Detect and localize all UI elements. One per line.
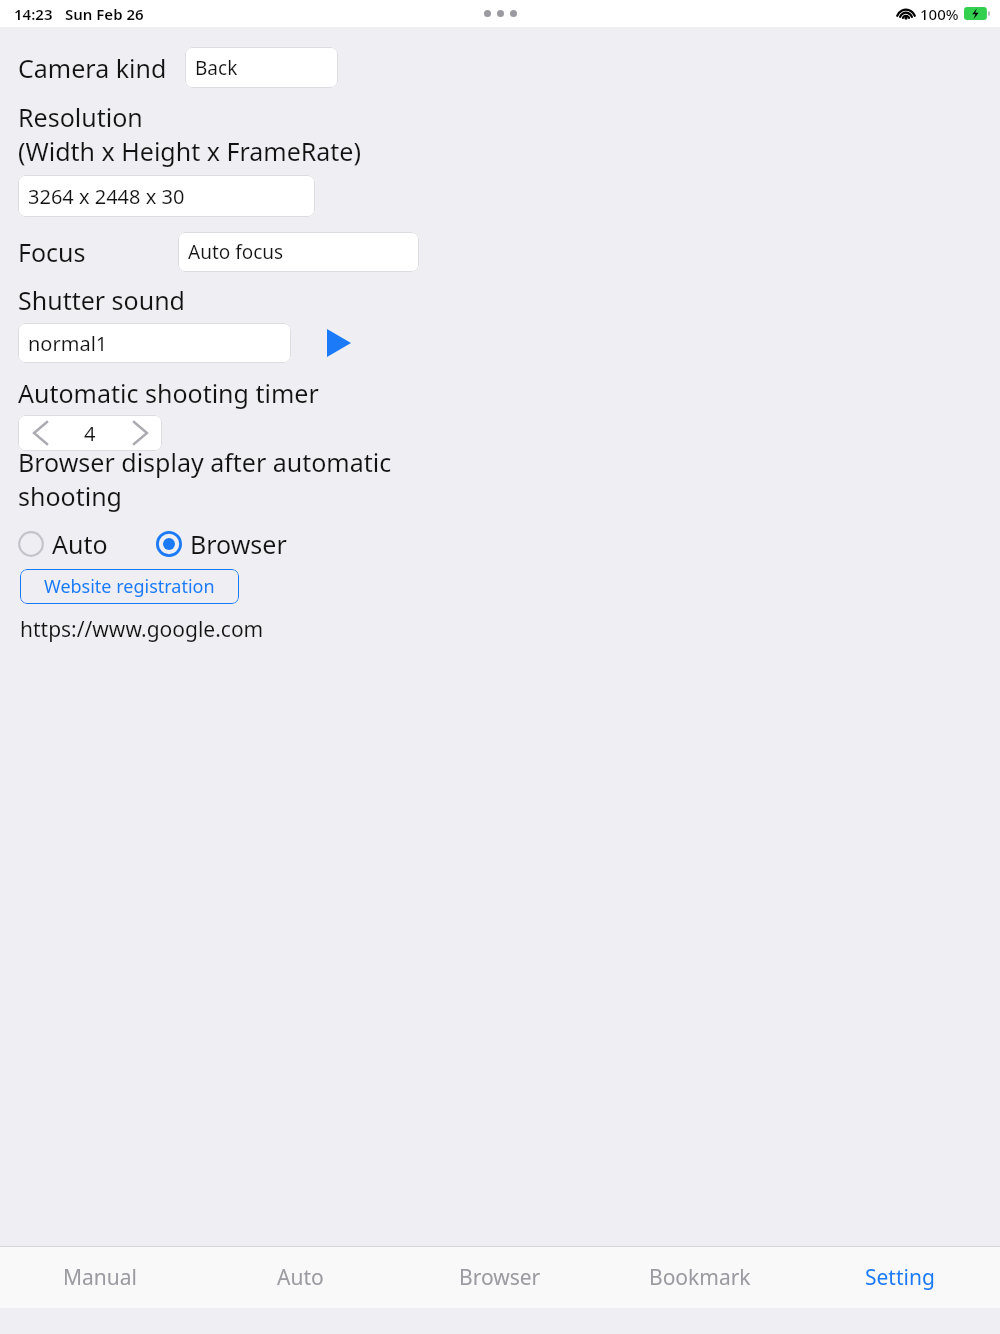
staticText: Focus: [18, 235, 86, 269]
button[interactable]: Manual: [0, 1247, 200, 1308]
staticText: Back: [195, 55, 238, 81]
button[interactable]: Auto: [200, 1247, 400, 1308]
staticText: Auto: [277, 1263, 324, 1292]
button[interactable]: Back: [185, 47, 338, 88]
button[interactable]: 3264 x 2448 x 30: [18, 175, 315, 217]
staticText: Camera kind: [18, 51, 167, 85]
staticText: Setting: [865, 1263, 935, 1292]
button[interactable]: Play shutter sound: [322, 326, 356, 360]
button[interactable]: Decrease timer: [18, 415, 62, 451]
staticText: Shutter sound: [18, 283, 185, 317]
staticText: 4: [84, 420, 96, 447]
button[interactable]: Browser: [156, 527, 287, 561]
staticText: Manual: [63, 1263, 137, 1292]
button[interactable]: Auto focus: [178, 232, 419, 272]
button[interactable]: Increase timer: [118, 415, 162, 451]
staticText: (Width x Height x FrameRate): [18, 134, 361, 168]
staticText: shooting: [18, 479, 122, 513]
staticText: Resolution: [18, 100, 143, 134]
staticText: 3264 x 2448 x 30: [28, 183, 185, 210]
staticText: Auto focus: [188, 239, 284, 265]
staticText: 100%: [920, 4, 959, 24]
staticText: Browser display after automatic: [18, 445, 392, 479]
button[interactable]: Bookmark: [600, 1247, 800, 1308]
staticText: Browser: [459, 1263, 541, 1292]
button[interactable]: Setting: [800, 1247, 1000, 1308]
staticText: https://www.google.com: [20, 615, 264, 644]
staticText: Bookmark: [649, 1263, 751, 1292]
staticText: 14:23: [14, 4, 53, 24]
button[interactable]: Browser: [400, 1247, 600, 1308]
staticText: Sun Feb 26: [65, 4, 144, 24]
button[interactable]: Website registration: [20, 569, 239, 604]
staticText: Browser: [190, 527, 287, 561]
staticText: Website registration: [44, 574, 215, 599]
staticText: Automatic shooting timer: [18, 376, 319, 410]
button[interactable]: Auto: [18, 527, 108, 561]
staticText: Auto: [52, 527, 108, 561]
button[interactable]: normal1: [18, 323, 291, 363]
staticText: normal1: [28, 330, 108, 357]
